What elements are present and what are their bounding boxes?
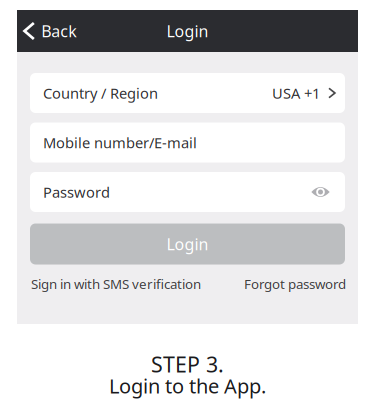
staticText: Login to the App. xyxy=(109,372,266,399)
staticText: Forgot password xyxy=(244,275,346,293)
staticText: Country / Region xyxy=(43,83,158,103)
button[interactable]: Login xyxy=(30,223,345,264)
staticText: USA +1 xyxy=(272,83,320,103)
staticText: Login xyxy=(166,20,208,42)
staticText: Back xyxy=(41,20,77,42)
staticText: STEP 3. xyxy=(151,350,224,378)
button[interactable]: Sign in with SMS verification xyxy=(31,275,201,293)
staticText: Sign in with SMS verification xyxy=(31,275,201,293)
staticText: Login xyxy=(166,233,208,255)
staticText: Mobile number/E-mail xyxy=(43,133,197,152)
staticText: Password xyxy=(43,182,110,202)
button[interactable]: Forgot password xyxy=(244,275,346,293)
button[interactable]: Country / Region xyxy=(30,73,345,113)
button[interactable]: Back xyxy=(17,10,89,52)
button[interactable]: Password xyxy=(30,172,345,212)
button[interactable]: Mobile number/E-mail xyxy=(30,122,345,162)
